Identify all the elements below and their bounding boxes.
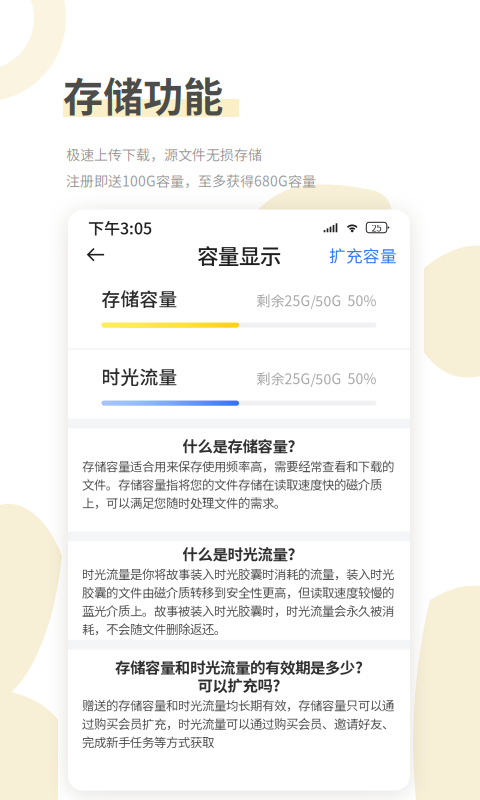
staticText: 存储容量和时光流量的有效期是多少? [115,656,363,678]
staticText: 25 [372,221,382,234]
staticText: 极速上传下载，源文件无损存储 [66,144,262,164]
staticText: 可以扩充吗? [197,674,280,696]
staticText: 下午3:05 [88,216,152,239]
button[interactable]: 扩充容量 [329,240,397,270]
staticText: 剩余25G/50G [256,368,341,388]
staticText: 什么是时光流量? [182,542,295,565]
staticText: 赠送的存储容量和时光流量均长期有效，存储容量只可以通过购买会员扩充，时光流量可以… [82,696,394,751]
staticText: 50% [347,368,376,388]
staticText: 50% [347,290,376,310]
staticText: 时光流量 [101,363,177,390]
staticText: 存储容量 [101,284,177,311]
staticText: 存储功能 [63,65,223,123]
staticText: 注册即送100G容量，至多获得680G容量 [66,170,316,191]
button[interactable]: 返回 [81,240,111,270]
staticText: 容量显示 [197,240,281,270]
staticText: 存储容量适合用来保存使用频率高，需要经常查看和下载的文件。存储容量指将您的文件存… [82,457,394,511]
staticText: 什么是存储容量? [182,434,295,457]
staticText: 剩余25G/50G [256,290,341,310]
staticText: 扩充容量 [329,243,397,267]
staticText: 时光流量是你将故事装入时光胶囊时消耗的流量，装入时光胶囊的文件由磁介质转移到安全… [82,564,394,638]
